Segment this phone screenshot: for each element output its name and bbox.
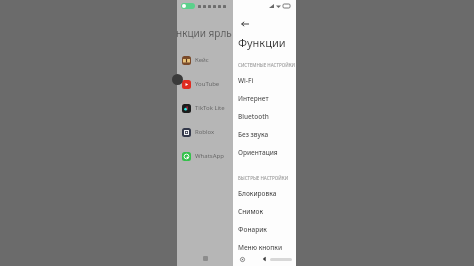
button[interactable]: Снимок — [233, 202, 296, 220]
staticText: БЫСТРЫЕ НАСТРОЙКИ — [238, 175, 289, 181]
staticText: Интернет — [238, 94, 269, 103]
button[interactable]: TikTok Lite — [177, 96, 233, 120]
staticText: TikTok Lite — [195, 104, 225, 112]
button[interactable]: Кейс симулят — [177, 48, 233, 72]
staticText: нкции ярль — [176, 26, 232, 40]
button[interactable]: Блокировка — [233, 184, 296, 202]
button[interactable]: Развернуть понель — [233, 256, 296, 266]
button[interactable]: Без звука — [233, 125, 296, 143]
staticText: Меню кнопки питания — [238, 243, 296, 252]
button[interactable]: Bluetooth — [233, 107, 296, 125]
staticText: Bluetooth — [238, 112, 269, 121]
staticText: Блокировка — [238, 189, 277, 198]
button[interactable]: YouTube — [177, 72, 233, 96]
staticText: YouTube — [195, 80, 220, 88]
staticText: Развернуть понель — [238, 257, 296, 266]
staticText: Без звука — [238, 130, 269, 139]
staticText: Снимок — [238, 207, 264, 216]
button[interactable]: Wi-Fi — [233, 71, 296, 89]
button[interactable]: Фонарик — [233, 220, 296, 238]
staticText: Кейс симулят — [195, 56, 233, 64]
button[interactable]: Back — [238, 17, 252, 31]
button[interactable]: Ориентация — [233, 143, 296, 161]
button[interactable]: Меню кнопки питания — [233, 238, 296, 256]
button[interactable]: Home — [260, 254, 270, 264]
button[interactable]: Roblox — [177, 120, 233, 144]
staticText: СИСТЕМНЫЕ НАСТРОЙКИ — [238, 62, 295, 68]
staticText: WhatsApp — [195, 152, 224, 160]
staticText: Ориентация — [238, 148, 278, 157]
button[interactable]: Recents — [203, 256, 208, 261]
staticText: Roblox — [195, 128, 215, 136]
staticText: Wi-Fi — [238, 76, 254, 85]
staticText: Функции ярл — [238, 35, 296, 50]
staticText: Фонарик — [238, 225, 267, 234]
button[interactable]: Back — [238, 255, 246, 263]
button[interactable]: Интернет — [233, 89, 296, 107]
button[interactable]: WhatsApp — [177, 144, 233, 168]
